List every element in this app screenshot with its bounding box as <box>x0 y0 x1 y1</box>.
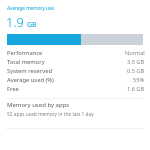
staticText: Memory used by apps <box>7 101 70 109</box>
button[interactable]: Total memory <box>0 57 150 66</box>
staticText: 55% <box>133 76 145 84</box>
staticText: Free <box>7 85 19 93</box>
staticText: Average memory use <box>7 5 54 11</box>
button[interactable]: Memory used by apps <box>0 100 150 121</box>
staticText: Normal <box>125 49 145 57</box>
staticText: 3.5 GB <box>127 58 145 66</box>
button[interactable]: System reserved <box>0 66 150 75</box>
staticText: Total memory <box>7 58 45 66</box>
button[interactable]: Performance <box>0 48 150 57</box>
staticText: Average used (%) <box>7 76 54 84</box>
staticText: 0.5 GB <box>127 67 145 75</box>
staticText: GB <box>27 20 37 30</box>
staticText: 52 apps used memory in the last 1 day <box>7 111 94 118</box>
staticText: System reserved <box>7 67 52 75</box>
staticText: Performance <box>7 49 43 57</box>
staticText: 1.6 GB <box>127 85 145 93</box>
button[interactable]: Average used (%) <box>0 75 150 84</box>
staticText: 1.9 <box>6 13 25 31</box>
button[interactable]: Free <box>0 84 150 93</box>
